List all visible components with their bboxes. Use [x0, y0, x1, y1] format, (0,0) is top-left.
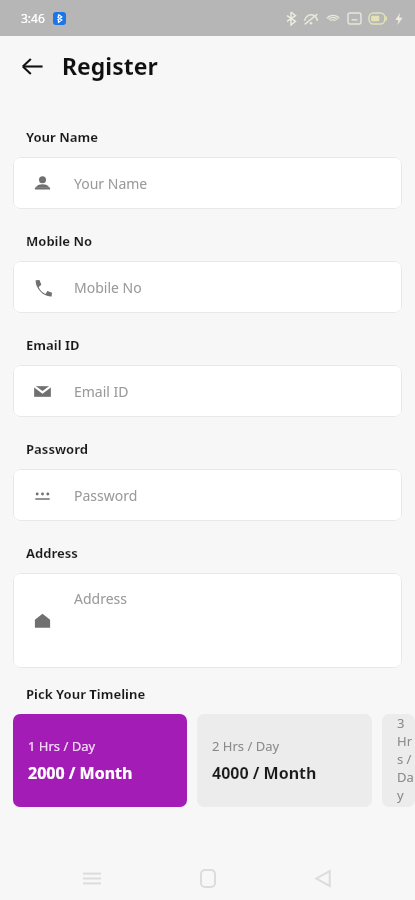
button[interactable]: Home — [184, 856, 232, 900]
staticText: Pick Your Timeline — [26, 685, 146, 703]
staticText: Register — [62, 50, 158, 81]
staticText: Mobile No — [74, 278, 142, 297]
staticText: Address — [74, 589, 127, 608]
button[interactable]: Mobile No — [13, 261, 402, 313]
staticText: 4000 / Month — [212, 762, 317, 784]
staticText: Address — [26, 544, 78, 562]
staticText: Mobile No — [26, 232, 93, 250]
staticText: Email ID — [26, 336, 80, 354]
staticText: 3:46 — [21, 10, 45, 26]
staticText: 1 Hrs / Day — [28, 737, 96, 755]
button[interactable]: Your Name — [13, 157, 402, 209]
button[interactable]: Back — [299, 856, 347, 900]
staticText: 3 Hrs / Day — [397, 714, 415, 804]
button[interactable]: Password — [13, 469, 402, 521]
staticText: Password — [26, 440, 88, 458]
staticText: 2 Hrs / Day — [212, 737, 280, 755]
staticText: Password — [74, 486, 138, 505]
button[interactable]: 1 Hrs / Day — [13, 714, 187, 807]
staticText: Your Name — [74, 174, 148, 193]
button[interactable]: Back — [17, 51, 47, 81]
button[interactable]: Recent apps — [68, 856, 116, 900]
button[interactable]: Address — [13, 573, 402, 668]
staticText: Your Name — [26, 128, 99, 146]
staticText: Email ID — [74, 382, 129, 401]
button[interactable]: 2 Hrs / Day — [197, 714, 372, 807]
button[interactable]: Email ID — [13, 365, 402, 417]
button[interactable]: 3 Hrs / Day — [382, 714, 415, 807]
staticText: 2000 / Month — [28, 762, 133, 784]
